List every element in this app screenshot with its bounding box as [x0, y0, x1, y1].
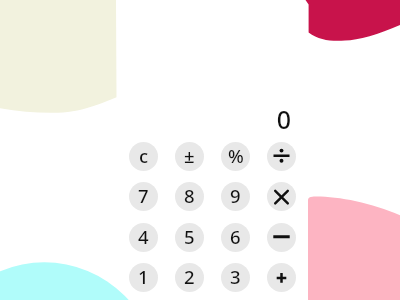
staticText: 4 — [138, 224, 149, 249]
staticText: 2 — [184, 264, 195, 289]
staticText: 0 — [265, 102, 303, 136]
button[interactable]: 1 — [129, 263, 158, 292]
staticText: 3 — [230, 264, 241, 289]
staticText: 1 — [138, 264, 149, 289]
button[interactable]: 9 — [221, 182, 250, 211]
staticText: 8 — [184, 183, 195, 208]
button[interactable]: 5 — [175, 223, 204, 252]
staticText: 5 — [184, 224, 195, 249]
button[interactable]: Add — [267, 263, 296, 292]
button[interactable]: 2 — [175, 263, 204, 292]
button[interactable]: 6 — [221, 223, 250, 252]
staticText: ± — [184, 143, 195, 168]
button[interactable]: Divide — [267, 142, 296, 171]
staticText: 7 — [138, 183, 149, 208]
button[interactable]: ± — [175, 142, 204, 171]
button[interactable]: Subtract — [267, 223, 296, 252]
staticText: 9 — [230, 183, 241, 208]
button[interactable]: c — [129, 142, 158, 171]
button[interactable]: 8 — [175, 182, 204, 211]
staticText: % — [228, 143, 244, 168]
button[interactable]: 3 — [221, 263, 250, 292]
staticText: c — [139, 143, 149, 168]
staticText: 6 — [230, 224, 241, 249]
button[interactable]: % — [221, 142, 250, 171]
button[interactable]: Multiply — [267, 182, 296, 211]
button[interactable]: 4 — [129, 223, 158, 252]
button[interactable]: 7 — [129, 182, 158, 211]
